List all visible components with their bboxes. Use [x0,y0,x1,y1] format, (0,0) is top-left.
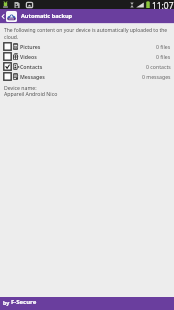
staticText: 0 contacts [146,63,171,70]
button[interactable]: Videos [0,51,174,61]
button[interactable]: Messages [0,71,174,81]
staticText: Contacts [20,63,43,70]
staticText: The following content on your device is … [4,27,168,41]
button[interactable]: Contacts [0,61,174,71]
button[interactable]: Back [0,9,174,23]
staticText: F-Secure [11,298,37,306]
button[interactable]: by [0,297,174,310]
staticText: Pictures [20,43,41,50]
staticText: 0 files [156,53,171,60]
other: Back [1,13,5,20]
staticText: 11:07 [152,0,174,9]
staticText: Messages [20,73,45,80]
staticText: Automatic backup [21,12,73,20]
staticText: Videos [20,53,37,60]
staticText: by [3,299,11,306]
button[interactable]: Pictures [0,41,174,51]
staticText: 0 messages [142,73,171,80]
staticText: Device name: Appareil Android Nico [4,84,58,98]
staticText: 0 files [156,43,171,50]
